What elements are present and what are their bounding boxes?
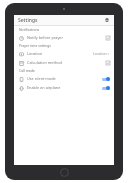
button[interactable]: Toggle switch on [102, 77, 110, 81]
button[interactable]: Delete [103, 16, 111, 24]
button[interactable]: Calculation method [14, 58, 114, 67]
staticText: Location [27, 51, 93, 56]
staticText: Enable on airplane [27, 85, 102, 90]
button[interactable]: Notify before prayer [14, 33, 114, 42]
button[interactable]: Toggle switch on [102, 86, 110, 90]
staticText: Notify before prayer [27, 35, 106, 40]
staticText: Calculation method [27, 60, 106, 65]
button[interactable]: Enable on airplane [14, 83, 114, 92]
staticText: Call mode [19, 68, 35, 73]
button[interactable]: Use silent mode [14, 74, 114, 83]
staticText: Settings [18, 17, 38, 24]
staticText: Notifications [19, 27, 40, 32]
button[interactable]: Toggle option [106, 36, 110, 40]
button[interactable]: Toggle option [106, 61, 110, 65]
staticText: Prayer time settings [19, 43, 51, 48]
button[interactable]: Location [14, 49, 114, 58]
staticText: Location > [93, 51, 110, 56]
staticText: Use silent mode [27, 76, 102, 81]
